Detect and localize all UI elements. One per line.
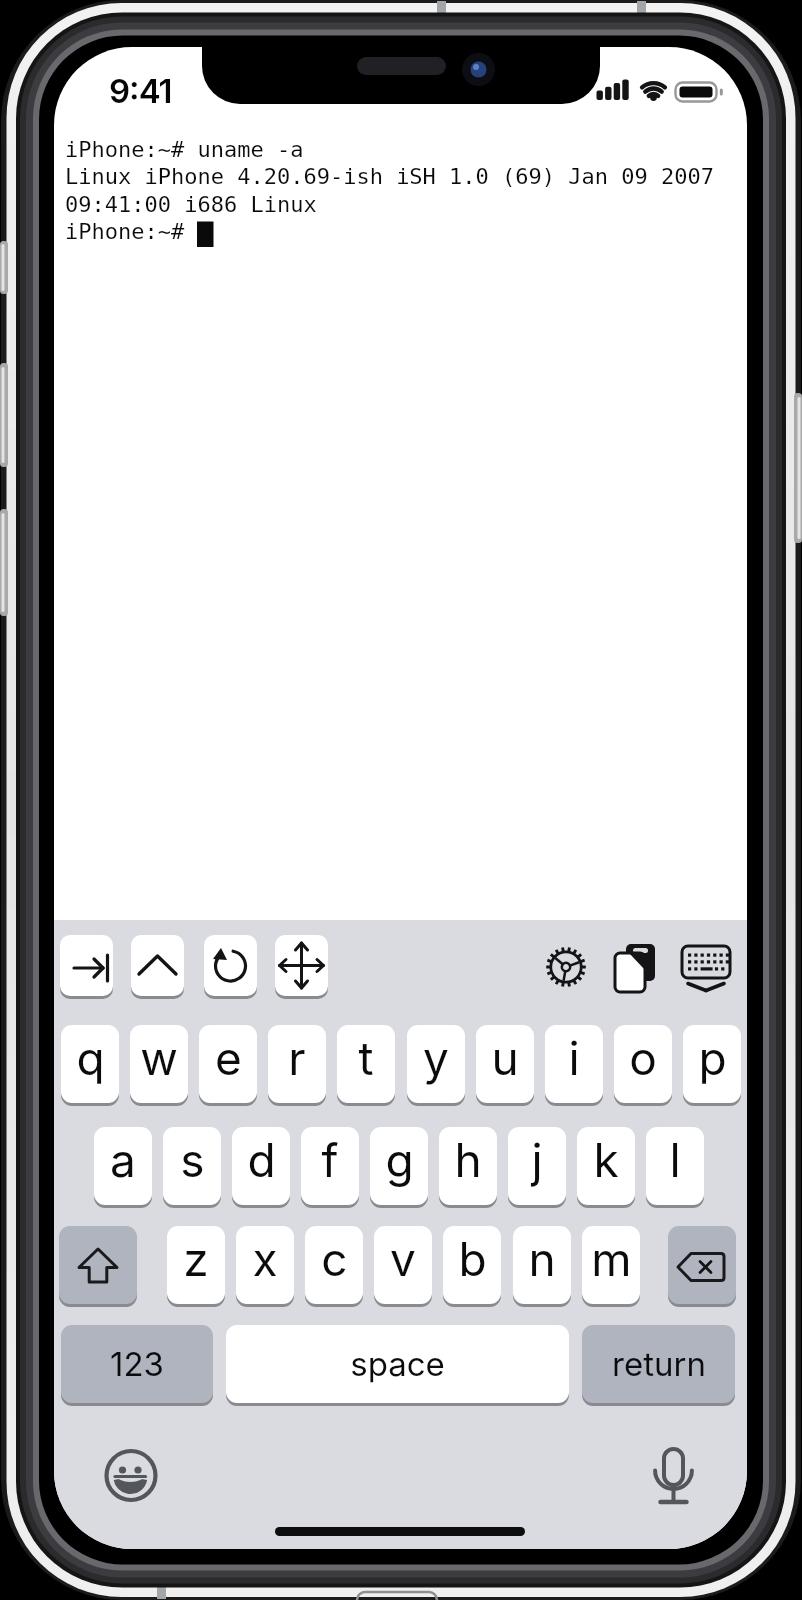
button[interactable]: q [61,1025,119,1103]
staticText: g [385,1132,414,1188]
staticText: v [390,1231,416,1287]
staticText: a [110,1132,136,1188]
staticText: space [350,1344,445,1384]
button[interactable]: w [130,1025,188,1103]
staticText: i [568,1030,580,1086]
button[interactable] [544,939,594,993]
button[interactable] [104,1449,158,1503]
button[interactable]: m [582,1226,640,1304]
staticText: u [491,1030,519,1086]
button[interactable]: x [236,1226,294,1304]
staticText: w [140,1030,178,1086]
button[interactable]: i [545,1025,603,1103]
staticText: h [454,1132,482,1188]
button[interactable]: a [94,1127,152,1205]
staticText: iPhone:~# uname -a [65,137,304,163]
button[interactable]: 123 [61,1325,213,1403]
button[interactable]: o [614,1025,672,1103]
staticText: n [528,1231,556,1287]
staticText: o [629,1030,657,1086]
button[interactable]: z [167,1226,225,1304]
staticText: 123 [110,1344,164,1384]
button[interactable]: t [337,1025,395,1103]
staticText: c [321,1231,348,1287]
staticText: f [321,1132,339,1188]
button[interactable]: h [439,1127,497,1205]
button[interactable] [60,935,113,996]
button[interactable]: p [683,1025,741,1103]
staticText: 9:41 [109,71,172,111]
button[interactable]: s [163,1127,221,1205]
button[interactable]: u [476,1025,534,1103]
button[interactable]: g [370,1127,428,1205]
button[interactable]: r [268,1025,326,1103]
button[interactable] [275,935,328,996]
button[interactable]: f [301,1127,359,1205]
staticText: 09:41:00 i686 Linux [65,192,317,218]
button[interactable]: n [513,1226,571,1304]
staticText: return [612,1344,706,1384]
button[interactable] [131,935,184,996]
staticText: j [531,1132,543,1188]
staticText: t [358,1030,374,1086]
button[interactable]: v [374,1226,432,1304]
staticText: m [591,1231,632,1287]
button[interactable] [668,1226,736,1304]
button[interactable]: k [577,1127,635,1205]
staticText: p [698,1030,727,1086]
button[interactable]: b [443,1226,501,1304]
staticText: x [252,1231,278,1287]
button[interactable]: return [582,1325,735,1403]
staticText: iPhone:~# [65,219,185,245]
button[interactable]: e [199,1025,257,1103]
button[interactable]: c [305,1226,363,1304]
staticText: y [423,1030,449,1086]
button[interactable] [204,935,257,996]
staticText: r [288,1030,306,1086]
button[interactable]: space [226,1325,569,1403]
button[interactable]: l [646,1127,704,1205]
staticText: q [76,1030,105,1086]
button[interactable] [609,939,659,993]
button[interactable]: y [407,1025,465,1103]
staticText: z [183,1231,209,1287]
button[interactable]: d [232,1127,290,1205]
staticText: s [180,1132,205,1188]
staticText: Linux iPhone 4.20.69-ish iSH 1.0 (69) Ja… [65,164,715,190]
staticText: d [247,1132,276,1188]
staticText: k [593,1132,619,1188]
button[interactable]: j [508,1127,566,1205]
staticText: b [458,1231,487,1287]
button[interactable] [676,939,730,993]
staticText: e [215,1030,242,1086]
button[interactable] [646,1449,700,1503]
staticText: l [669,1132,681,1188]
button[interactable] [59,1226,137,1304]
